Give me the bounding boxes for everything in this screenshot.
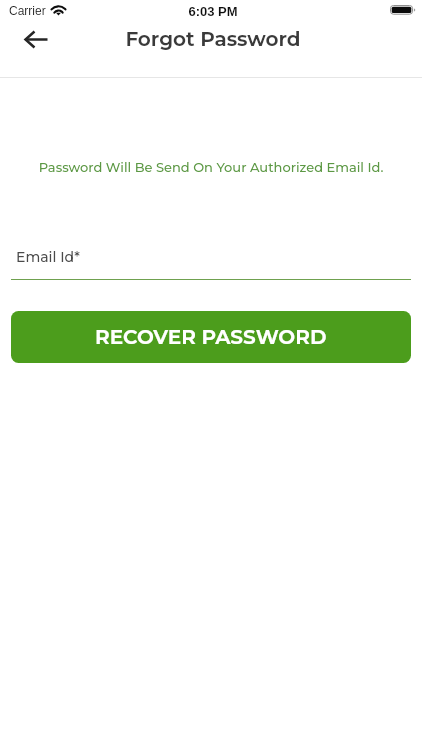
staticText: Password Will Be Send On Your Authorized…	[0, 159, 422, 175]
staticText: 6:03 PM	[2, 4, 422, 19]
staticText: RECOVER PASSWORD	[95, 325, 327, 349]
staticText: Email Id*	[16, 248, 80, 265]
staticText: Forgot Password	[2, 27, 422, 51]
staticText: Carrier	[9, 4, 46, 17]
button[interactable]: RECOVER PASSWORD	[11, 311, 411, 363]
button[interactable]: Back	[12, 18, 60, 60]
